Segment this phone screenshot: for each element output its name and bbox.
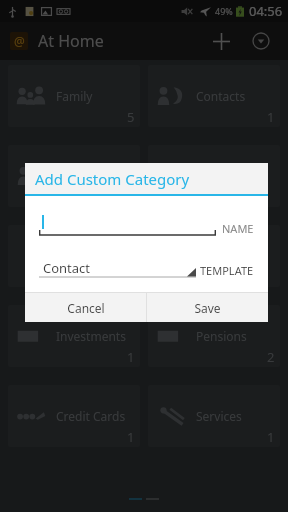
button[interactable] [148,225,280,287]
staticText: Family [56,88,93,104]
button[interactable]: More options [244,24,278,58]
staticText: 1 [127,428,135,446]
button[interactable]: Contact [39,258,254,278]
staticText: Contacts [196,88,246,104]
staticText: Add Custom Category [35,169,190,189]
staticText: Pensions [196,328,247,344]
button[interactable]: Pensions [148,305,280,367]
button[interactable]: Save [147,293,268,322]
staticText: Friends [56,168,98,184]
staticText: @ [14,33,25,49]
staticText: 1 [127,348,135,366]
button[interactable]: Contacts [148,65,280,127]
staticText: Credit Cards [56,408,126,424]
staticText: At Home [38,30,104,52]
staticText: TEMPLATE [200,263,254,278]
staticText: Contact [43,259,91,277]
button[interactable]: Family [8,65,140,127]
button[interactable]: Services [148,385,280,447]
button[interactable]: Investments [8,305,140,367]
button[interactable]: Credit Cards [8,385,140,447]
staticText: 1 [267,108,275,126]
staticText: Investments [56,328,126,344]
button[interactable]: Friends [8,145,140,207]
staticText: Save [194,300,221,316]
staticText: 04:56 [249,2,283,20]
staticText: 5 [127,108,135,126]
staticText: Services [196,408,242,424]
button[interactable] [8,225,140,287]
button[interactable]: Cancel [25,293,146,322]
staticText: Cancel [67,300,105,316]
button[interactable]: Work [148,145,280,207]
staticText: 2 [267,348,275,366]
button[interactable]: Add [204,24,238,58]
staticText: 49% [215,5,233,17]
staticText: 1 [267,428,275,446]
staticText: NAME [222,221,254,236]
